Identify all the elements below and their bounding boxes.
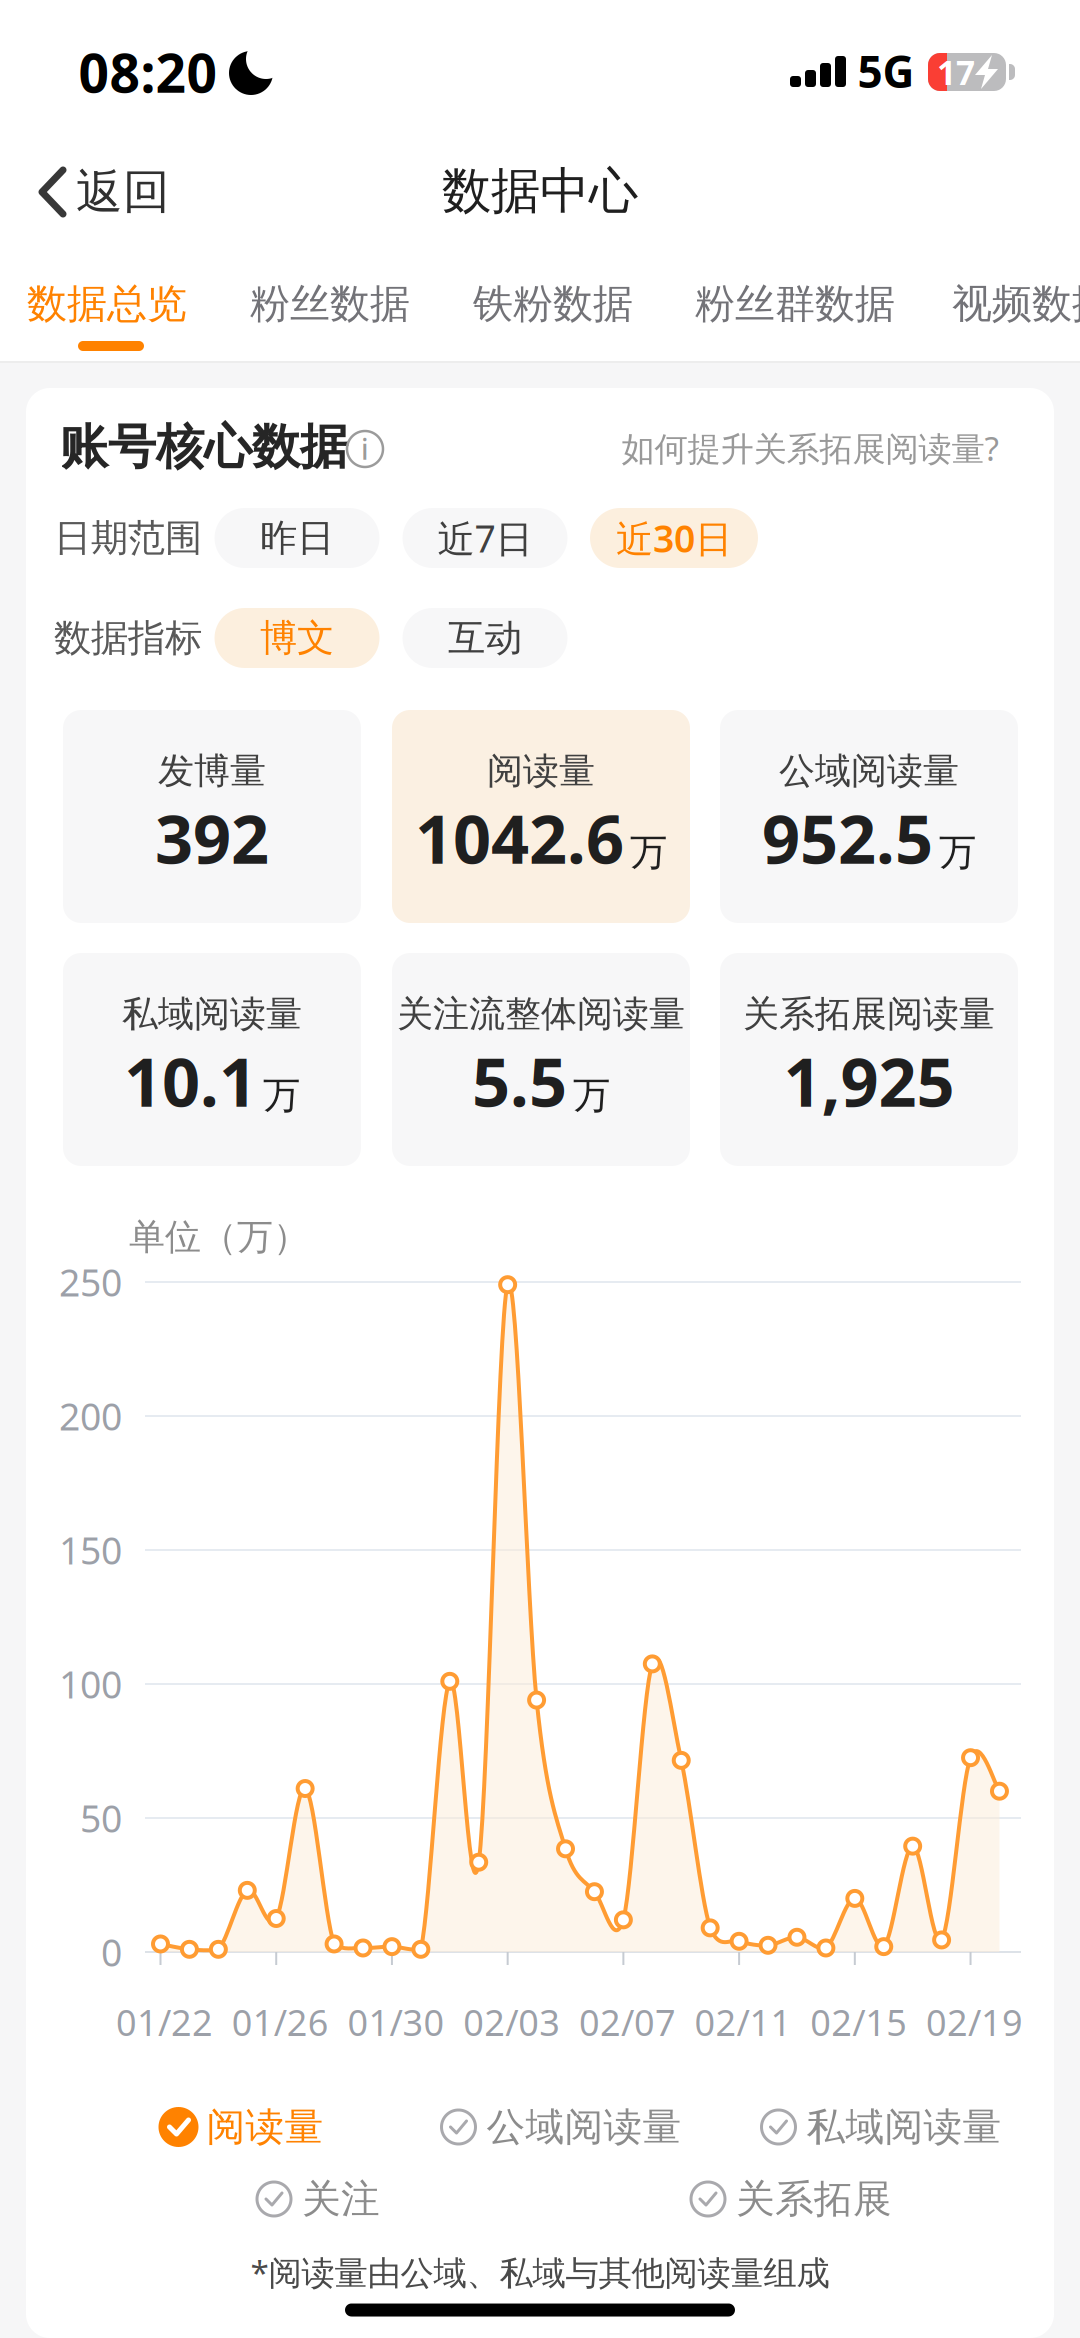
staticText: 如何提升关系拓展阅读量? <box>621 426 998 470</box>
button[interactable]: 阅读量 <box>392 710 690 923</box>
button[interactable]: 公域阅读量 <box>720 710 1018 923</box>
staticText: 账号核心数据 <box>60 417 348 476</box>
staticText: 博文 <box>260 615 334 661</box>
staticText: 万 <box>939 829 976 875</box>
staticText: 日期范围 <box>54 515 202 561</box>
staticText: 阅读量 <box>206 2103 323 2151</box>
button[interactable]: 粉丝数据 <box>235 259 425 349</box>
button[interactable]: 视频数据 <box>937 259 1080 349</box>
staticText: 阅读量 <box>487 749 595 793</box>
staticText: 数据指标 <box>54 615 202 661</box>
staticText: 粉丝群数据 <box>695 279 895 328</box>
staticText: 私域阅读量 <box>806 2103 1001 2151</box>
staticText: 万 <box>630 829 667 875</box>
button[interactable]: 铁粉数据 <box>458 259 648 349</box>
staticText: 5G <box>857 42 914 100</box>
staticText: 02/07 <box>579 1998 676 2046</box>
staticText: 返回 <box>76 163 170 221</box>
button[interactable]: 昨日 <box>214 508 379 568</box>
button[interactable]: 关系拓展 <box>688 2175 892 2223</box>
button[interactable]: 近30日 <box>590 508 758 568</box>
staticText: 数据总览 <box>27 279 187 328</box>
staticText: 02/19 <box>926 1998 1023 2046</box>
staticText: 关注流整体阅读量 <box>397 992 685 1036</box>
staticText: 01/26 <box>232 1998 329 2046</box>
staticText: i <box>361 430 369 468</box>
staticText: 02/03 <box>463 1998 560 2046</box>
staticText: 关系拓展 <box>736 2175 892 2223</box>
button[interactable]: 关系拓展阅读量 <box>720 953 1018 1166</box>
staticText: 02/15 <box>810 1998 907 2046</box>
staticText: 公域阅读量 <box>486 2103 681 2151</box>
staticText: 互动 <box>448 615 522 661</box>
staticText: 昨日 <box>260 515 334 561</box>
staticText: 万 <box>263 1072 300 1118</box>
button[interactable]: 数据总览 <box>12 259 202 349</box>
staticText: 关系拓展阅读量 <box>743 992 995 1036</box>
staticText: 17 <box>937 50 975 94</box>
button[interactable]: 公域阅读量 <box>438 2103 681 2151</box>
button[interactable]: 近7日 <box>402 508 567 568</box>
staticText: 近30日 <box>616 513 732 563</box>
button[interactable]: 发博量 <box>63 710 361 923</box>
staticText: 08:20 <box>78 37 217 107</box>
staticText: 万 <box>573 1072 610 1118</box>
staticText: 公域阅读量 <box>779 749 959 793</box>
button[interactable]: 阅读量 <box>158 2103 323 2151</box>
button[interactable]: 关注流整体阅读量 <box>392 953 690 1166</box>
staticText: 01/30 <box>347 1998 444 2046</box>
staticText: 铁粉数据 <box>473 279 633 328</box>
staticText: 关注 <box>302 2175 380 2223</box>
staticText: 单位（万） <box>129 1215 309 1259</box>
staticText: 50 <box>80 1793 122 1843</box>
staticText: 数据中心 <box>442 161 638 221</box>
staticText: *阅读量由公域、私域与其他阅读量组成 <box>250 2250 829 2294</box>
staticText: 01/22 <box>116 1998 213 2046</box>
staticText: 952.5 <box>762 794 933 882</box>
staticText: 250 <box>59 1257 122 1307</box>
button[interactable]: 私域阅读量 <box>758 2103 1001 2151</box>
button[interactable]: 关注 <box>254 2175 380 2223</box>
staticText: 近7日 <box>437 513 532 563</box>
button[interactable]: 互动 <box>402 608 567 668</box>
button[interactable]: 私域阅读量 <box>63 953 361 1166</box>
button[interactable]: 粉丝群数据 <box>680 259 910 349</box>
staticText: 200 <box>59 1391 122 1441</box>
button[interactable]: 如何提升关系拓展阅读量? <box>621 426 998 470</box>
button[interactable]: i <box>0 0 1080 2338</box>
staticText: 私域阅读量 <box>122 992 302 1036</box>
staticText: 1042.6 <box>415 794 624 882</box>
staticText: 1,925 <box>783 1037 954 1125</box>
staticText: 5.5 <box>472 1037 567 1125</box>
staticText: 发博量 <box>158 749 266 793</box>
staticText: 100 <box>59 1659 122 1709</box>
staticText: 视频数据 <box>952 279 1080 328</box>
button[interactable]: 返回 <box>0 0 1080 2338</box>
staticText: 粉丝数据 <box>250 279 410 328</box>
button[interactable]: 博文 <box>214 608 379 668</box>
staticText: 10.1 <box>124 1037 257 1125</box>
staticText: 02/11 <box>695 1998 792 2046</box>
staticText: 150 <box>59 1525 122 1575</box>
staticText: 0 <box>101 1927 122 1977</box>
staticText: 392 <box>155 794 269 882</box>
